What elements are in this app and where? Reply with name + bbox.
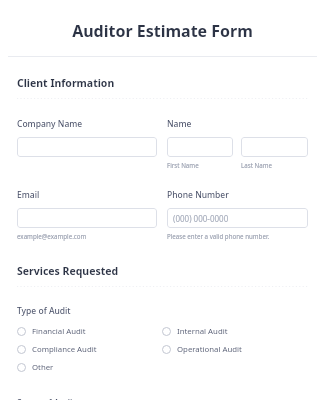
staticText: Client Information [17,76,115,90]
staticText: example@example.com [17,232,87,240]
staticText: Name [167,118,192,130]
button[interactable] [167,137,233,157]
button[interactable]: Internal Audit [162,324,228,339]
staticText: (000) 000-0000 [173,213,229,224]
staticText: Company Name [17,118,83,130]
staticText: Type of Audit [17,305,71,317]
button[interactable] [17,208,157,228]
staticText: Phone Number [167,189,229,201]
button[interactable]: Other [17,360,54,375]
staticText: Operational Audit [177,344,242,355]
staticText: Please enter a valid phone number. [167,232,270,240]
button[interactable] [17,137,157,157]
button[interactable]: Compliance Audit [17,342,97,357]
staticText: First Name [167,161,199,169]
staticText: Email [17,189,40,201]
button[interactable]: Operational Audit [162,342,242,357]
staticText: Scope of Audit [17,397,76,400]
button[interactable]: Financial Audit [17,324,86,339]
staticText: Auditor Estimate Form [0,20,325,42]
button[interactable]: (000) 000-0000 [167,208,308,228]
staticText: Last Name [241,161,272,169]
staticText: Other [32,362,54,373]
staticText: Financial Audit [32,326,86,337]
staticText: Compliance Audit [32,344,97,355]
staticText: Services Requested [17,264,119,278]
staticText: Internal Audit [177,326,228,337]
button[interactable] [241,137,308,157]
